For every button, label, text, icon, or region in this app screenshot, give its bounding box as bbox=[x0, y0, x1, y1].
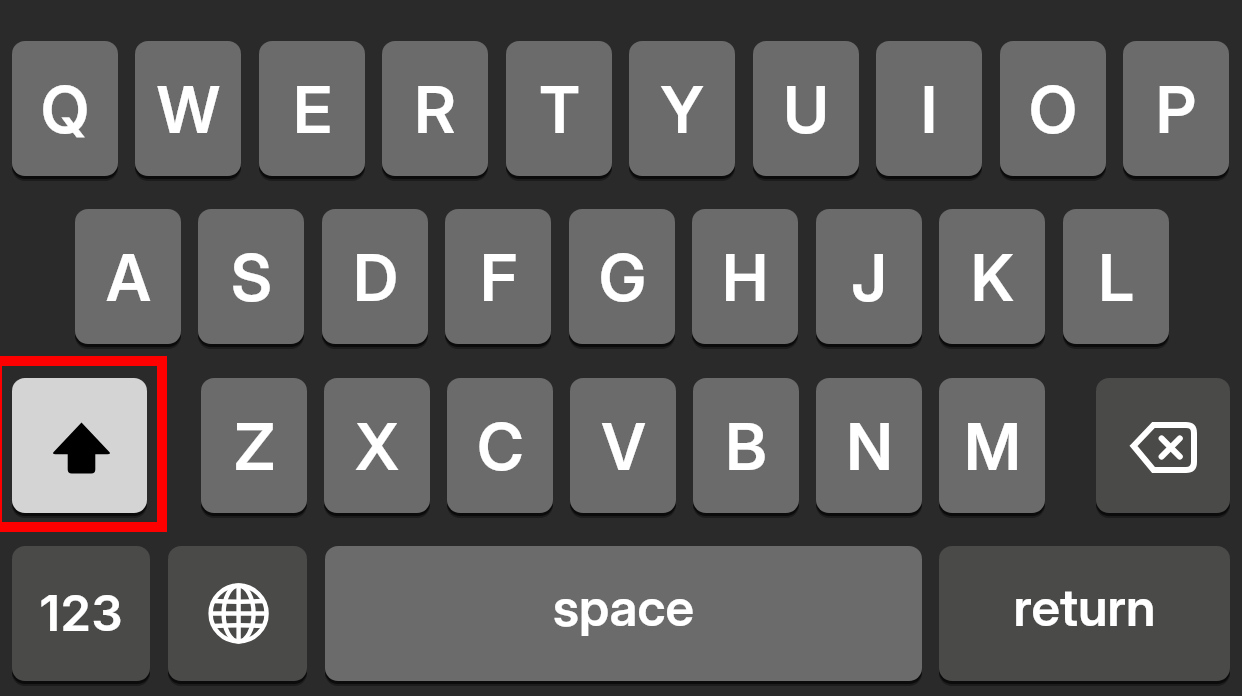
button[interactable]: E bbox=[259, 41, 365, 176]
staticText: return bbox=[1013, 576, 1156, 638]
staticText: D bbox=[353, 239, 398, 316]
button[interactable]: I bbox=[876, 41, 982, 176]
button[interactable]: G bbox=[569, 209, 675, 344]
staticText: P bbox=[1156, 71, 1196, 148]
button[interactable]: D bbox=[322, 209, 428, 344]
staticText: space bbox=[553, 576, 694, 638]
button[interactable]: O bbox=[1000, 41, 1106, 176]
button[interactable]: U bbox=[753, 41, 859, 176]
button[interactable]: P bbox=[1123, 41, 1229, 176]
staticText: S bbox=[231, 239, 272, 316]
staticText: Q bbox=[41, 71, 89, 148]
button[interactable]: W bbox=[135, 41, 241, 176]
button[interactable]: X bbox=[324, 378, 430, 513]
button[interactable]: R bbox=[382, 41, 488, 176]
button[interactable]: C bbox=[447, 378, 553, 513]
staticText: H bbox=[722, 239, 768, 316]
staticText: V bbox=[601, 408, 646, 485]
staticText: E bbox=[293, 71, 332, 148]
button[interactable]: Delete bbox=[1096, 378, 1230, 513]
button[interactable]: Z bbox=[201, 378, 307, 513]
button[interactable]: K bbox=[939, 209, 1045, 344]
staticText: C bbox=[477, 408, 524, 485]
staticText: T bbox=[539, 71, 580, 148]
button[interactable]: T bbox=[506, 41, 612, 176]
button[interactable]: A bbox=[75, 209, 181, 344]
button[interactable]: Y bbox=[629, 41, 735, 176]
staticText: X bbox=[355, 408, 399, 485]
staticText: Z bbox=[234, 408, 275, 485]
button[interactable]: H bbox=[692, 209, 798, 344]
staticText: I bbox=[921, 71, 937, 148]
staticText: B bbox=[725, 408, 767, 485]
button[interactable]: J bbox=[816, 209, 922, 344]
staticText: U bbox=[783, 71, 829, 148]
staticText: J bbox=[851, 239, 887, 316]
button[interactable]: Numbers and symbols bbox=[12, 546, 150, 681]
button[interactable]: N bbox=[816, 378, 922, 513]
button[interactable]: V bbox=[570, 378, 676, 513]
button[interactable]: Shift bbox=[12, 378, 147, 513]
staticText: L bbox=[1098, 239, 1134, 316]
staticText: G bbox=[599, 239, 646, 316]
staticText: M bbox=[964, 408, 1021, 485]
button[interactable]: Switch language bbox=[168, 546, 307, 681]
button[interactable]: return bbox=[939, 546, 1230, 681]
staticText: R bbox=[414, 71, 456, 148]
staticText: A bbox=[106, 239, 151, 316]
button[interactable]: B bbox=[693, 378, 799, 513]
button[interactable]: space bbox=[325, 546, 922, 681]
staticText: Y bbox=[660, 71, 704, 148]
staticText: F bbox=[480, 239, 517, 316]
button[interactable]: F bbox=[445, 209, 551, 344]
button[interactable]: M bbox=[939, 378, 1045, 513]
staticText: N bbox=[846, 408, 893, 485]
button[interactable]: Q bbox=[12, 41, 118, 176]
button[interactable]: L bbox=[1063, 209, 1169, 344]
staticText: O bbox=[1029, 71, 1077, 148]
staticText: K bbox=[971, 239, 1014, 316]
staticText: W bbox=[157, 71, 220, 148]
staticText: 123 bbox=[39, 583, 123, 643]
button[interactable]: S bbox=[198, 209, 304, 344]
